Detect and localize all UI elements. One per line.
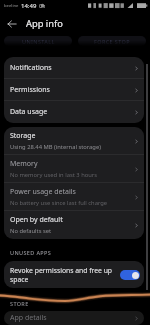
staticText: On xyxy=(39,3,46,9)
staticText: Revoke permissions and free up space xyxy=(10,266,116,284)
staticText: beeline xyxy=(4,3,19,9)
staticText: Open by default xyxy=(10,215,63,225)
button[interactable]: Back xyxy=(0,11,24,34)
button[interactable]: Memory xyxy=(4,155,144,183)
staticText: Data usage xyxy=(10,107,48,117)
staticText: UNUSED APPS xyxy=(10,249,52,256)
button[interactable]: Notifications xyxy=(4,57,144,79)
staticText: Power usage details xyxy=(10,187,76,197)
button[interactable]: FORCE STOP xyxy=(78,36,146,46)
staticText: FORCE STOP xyxy=(94,38,130,45)
staticText: App info xyxy=(26,17,63,30)
staticText: No memory used in last 3 hours xyxy=(10,171,97,179)
staticText: UNINSTALL xyxy=(22,38,55,45)
staticText: Using 28.44 MB (internal storage) xyxy=(10,143,101,151)
staticText: App details xyxy=(10,313,133,323)
staticText: Permissions xyxy=(10,85,50,95)
button[interactable]: Permissions xyxy=(4,79,144,101)
button[interactable]: Open by default xyxy=(4,211,144,239)
staticText: 14:49 xyxy=(21,2,37,10)
button[interactable]: UNINSTALL xyxy=(4,36,72,46)
button[interactable]: App details xyxy=(4,311,144,325)
button[interactable]: Data usage xyxy=(4,101,144,123)
staticText: STORE xyxy=(10,300,29,307)
staticText: Memory xyxy=(10,159,38,169)
button[interactable]: Storage xyxy=(4,127,144,155)
staticText: Storage xyxy=(10,131,36,141)
button[interactable]: Power usage details xyxy=(4,183,144,211)
staticText: No defaults set xyxy=(10,227,52,235)
staticText: No battery use since last full charge xyxy=(10,199,108,207)
staticText: Notifications xyxy=(10,63,52,73)
button[interactable]: Revoke permissions and free up space xyxy=(10,261,140,288)
